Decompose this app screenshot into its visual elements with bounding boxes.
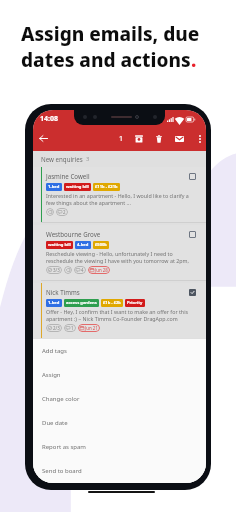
staticText: Interested in an apartment - Hello, I wo… (46, 192, 199, 206)
button[interactable]: More options (190, 126, 206, 151)
staticText: 2 (63, 209, 66, 215)
staticText: 4-bed (77, 242, 89, 248)
staticText: 14:08 (40, 114, 58, 124)
button[interactable]: Back (33, 126, 53, 151)
staticText: waiting bill (66, 184, 89, 190)
staticText: waiting bill (48, 242, 71, 248)
staticText: 2/3 (53, 325, 60, 331)
button[interactable]: Westbourne Grove (33, 225, 206, 280)
staticText: £500k (95, 242, 107, 248)
button[interactable]: Delete (149, 126, 169, 151)
staticText: £11k - £21k (95, 184, 118, 190)
staticText: Westbourne Grove (46, 230, 101, 238)
button[interactable]: Due date (33, 411, 206, 435)
staticText: Jun 21 (85, 325, 98, 331)
staticText: 3/3 (53, 267, 60, 273)
button[interactable]: Add tags (33, 339, 206, 363)
staticText: Due date (42, 419, 68, 427)
staticText: New enquiries (41, 155, 83, 163)
staticText: 1-bed (48, 300, 60, 306)
button[interactable]: Archive (129, 126, 149, 151)
button[interactable]: Change color (33, 387, 206, 411)
staticText: 3 (86, 155, 90, 163)
staticText: 1-bed (48, 184, 60, 190)
button[interactable]: Assign (33, 363, 206, 387)
staticText: 4 (81, 267, 84, 273)
staticText: Nick Timms (46, 288, 80, 296)
staticText: dates and actions (21, 47, 191, 73)
staticText: Change color (42, 395, 80, 403)
button[interactable]: Nick Timms (33, 283, 206, 338)
staticText: Assign (42, 371, 61, 379)
staticText: Offer - Hey, I confirm that I want to ma… (46, 308, 199, 322)
staticText: Send to board (42, 467, 82, 475)
staticText: Add tags (42, 347, 67, 355)
staticText: 1 (119, 134, 124, 144)
staticText: Assign emails, due (21, 21, 200, 47)
staticText: Reschedule viewing - Hello, unfortunatel… (46, 250, 199, 264)
button[interactable]: Jasmine Cowell (33, 167, 206, 222)
staticText: £1k - £2k (103, 300, 121, 306)
staticText: . (191, 47, 197, 73)
staticText: Jasmine Cowell (46, 172, 90, 180)
button[interactable]: Send to board (33, 459, 206, 483)
staticText: Jun 28 (95, 267, 108, 273)
staticText: 1 (71, 325, 74, 331)
staticText: Report as spam (42, 443, 86, 451)
staticText: Priority (127, 300, 143, 306)
staticText: access gardens (66, 300, 97, 306)
button[interactable]: Report as spam (33, 435, 206, 459)
button[interactable]: Mark as read (169, 126, 189, 151)
